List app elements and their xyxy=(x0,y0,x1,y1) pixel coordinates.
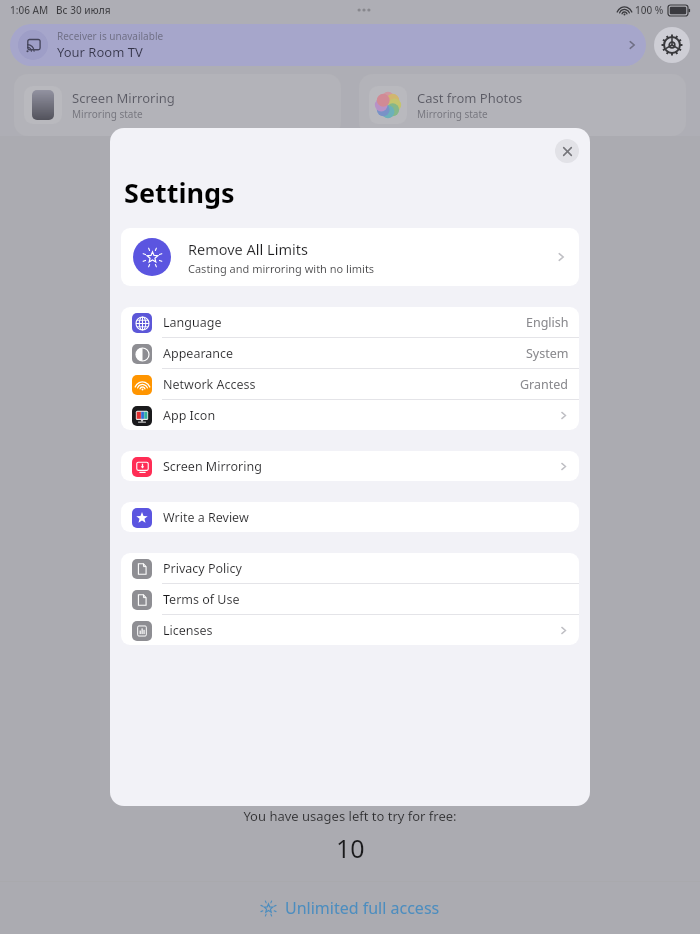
staticText: Casting and mirroring with no limits xyxy=(188,261,375,276)
button[interactable]: Write a Review xyxy=(121,502,579,532)
staticText: Settings xyxy=(124,174,235,211)
staticText: 100 % xyxy=(635,3,664,17)
staticText: Language xyxy=(163,314,222,331)
button[interactable]: App Icon xyxy=(121,400,579,430)
staticText: Remove All Limits xyxy=(188,239,308,259)
button[interactable]: Cast from Photos xyxy=(359,74,686,136)
staticText: Appearance xyxy=(163,345,234,362)
staticText: Вс 30 июля xyxy=(56,3,111,17)
staticText: Screen Mirroring xyxy=(72,89,175,107)
button[interactable]: Licenses xyxy=(121,615,579,645)
button[interactable]: Network Access xyxy=(121,369,579,399)
button[interactable]: Unlimited full access xyxy=(0,882,700,934)
button[interactable]: Screen Mirroring xyxy=(121,451,579,481)
staticText: Your Room TV xyxy=(57,43,143,61)
button[interactable]: Remove All Limits xyxy=(121,228,579,286)
staticText: Write a Review xyxy=(163,509,249,526)
staticText: Receiver is unavailable xyxy=(57,29,164,43)
staticText: Privacy Policy xyxy=(163,560,242,577)
staticText: 10 xyxy=(336,831,365,865)
button[interactable]: Privacy Policy xyxy=(121,553,579,583)
staticText: 1:06 AM xyxy=(10,3,49,17)
staticText: You have usages left to try for free: xyxy=(243,807,457,825)
staticText: Screen Mirroring xyxy=(163,458,262,475)
staticText: Mirroring state xyxy=(417,107,488,121)
staticText: App Icon xyxy=(163,407,216,424)
staticText: English xyxy=(526,314,569,331)
staticText: Terms of Use xyxy=(163,591,240,608)
button[interactable]: Language xyxy=(121,307,579,337)
button[interactable]: Screen Mirroring xyxy=(14,74,341,136)
staticText: Mirroring state xyxy=(72,107,143,121)
button[interactable]: Close xyxy=(555,139,579,163)
button[interactable]: Appearance xyxy=(121,338,579,368)
staticText: Licenses xyxy=(163,622,213,639)
button[interactable]: Settings xyxy=(654,27,690,63)
staticText: Cast from Photos xyxy=(417,89,523,107)
staticText: Network Access xyxy=(163,376,256,393)
button[interactable]: Receiver is unavailable xyxy=(10,24,646,66)
staticText: System xyxy=(526,345,569,362)
staticText: Unlimited full access xyxy=(285,897,440,919)
staticText: Granted xyxy=(520,376,569,393)
button[interactable]: Terms of Use xyxy=(121,584,579,614)
